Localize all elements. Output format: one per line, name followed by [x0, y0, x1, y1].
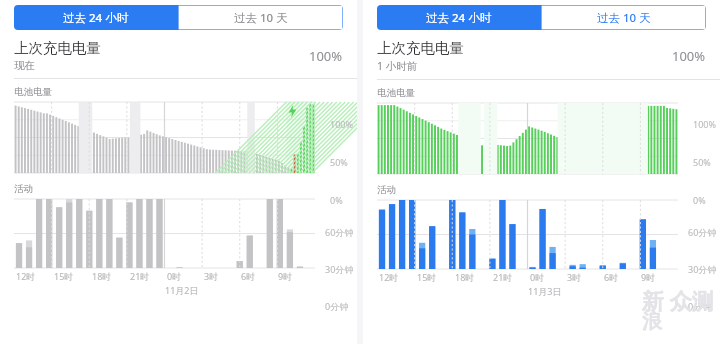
staticText: 60分钟	[688, 226, 717, 238]
button[interactable]: 过去 10 天	[541, 5, 706, 30]
staticText: 9时	[278, 270, 293, 282]
staticText: 50%	[693, 156, 711, 168]
staticText: 0分钟	[688, 300, 712, 312]
staticText: 30分钟	[688, 263, 717, 275]
staticText: 0时	[167, 270, 182, 282]
button[interactable]: 过去 24 小时	[14, 5, 178, 30]
button[interactable]: 过去 10 天	[178, 5, 343, 30]
staticText: 12时	[379, 271, 399, 283]
staticText: 1 小时前	[377, 59, 418, 73]
staticText: 3时	[204, 270, 219, 282]
staticText: 11月2日	[165, 284, 199, 296]
staticText: 100%	[693, 118, 716, 130]
staticText: 21时	[493, 271, 513, 283]
staticText: 过去 10 天	[597, 10, 651, 26]
staticText: 12时	[16, 270, 36, 282]
staticText: 电池电量	[14, 86, 52, 98]
staticText: 30分钟	[325, 263, 354, 275]
staticText: 0分钟	[325, 300, 349, 312]
staticText: 上次充电电量	[14, 39, 101, 57]
staticText: 3时	[567, 271, 582, 283]
staticText: 50%	[330, 156, 348, 168]
staticText: 过去 24 小时	[63, 10, 129, 26]
staticText: 0时	[530, 271, 545, 283]
staticText: 上次充电电量	[377, 39, 464, 57]
staticText: 100%	[330, 118, 353, 130]
staticText: 100%	[309, 47, 343, 65]
staticText: 100%	[672, 47, 706, 65]
staticText: 9时	[641, 271, 656, 283]
staticText: 活动	[377, 184, 396, 196]
staticText: 电池电量	[377, 87, 415, 99]
staticText: 活动	[14, 183, 33, 195]
staticText: 0%	[693, 194, 706, 206]
staticText: 60分钟	[325, 226, 354, 238]
staticText: 15时	[417, 271, 437, 283]
staticText: 浪	[642, 309, 662, 334]
staticText: 21时	[130, 270, 150, 282]
staticText: 过去 24 小时	[426, 10, 492, 26]
staticText: 18时	[92, 270, 112, 282]
staticText: 11月3日	[528, 285, 562, 297]
staticText: 过去 10 天	[234, 10, 288, 26]
staticText: 新 众测	[642, 285, 714, 315]
staticText: 现在	[14, 59, 35, 72]
button[interactable]: 过去 24 小时	[377, 5, 541, 30]
staticText: 6时	[604, 271, 619, 283]
staticText: 6时	[241, 270, 256, 282]
staticText: 0%	[330, 194, 343, 206]
staticText: 15时	[54, 270, 74, 282]
staticText: 18时	[455, 271, 475, 283]
